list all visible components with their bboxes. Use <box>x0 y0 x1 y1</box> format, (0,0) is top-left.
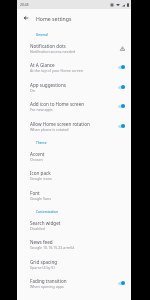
staticText: Search widget <box>30 220 61 226</box>
staticText: On <box>30 88 36 93</box>
button[interactable]: App suggestions <box>17 77 131 97</box>
button[interactable]: Back <box>17 9 34 27</box>
button[interactable]: Allow Home screen rotation <box>17 116 131 136</box>
staticText: Customization <box>36 210 131 214</box>
staticText: App suggestions <box>30 82 66 88</box>
staticText: At the top of your Home screen <box>30 68 83 73</box>
staticText: Accent <box>30 151 45 157</box>
button[interactable]: Font <box>17 185 131 205</box>
button[interactable]: News feed <box>17 234 131 254</box>
staticText: For new apps <box>30 107 53 112</box>
staticText: Google Sans <box>30 196 51 201</box>
staticText: General <box>36 33 131 37</box>
button[interactable]: Toggle <box>117 63 128 71</box>
staticText: Chosen <box>30 157 43 162</box>
button[interactable]: Grid spacing <box>17 254 131 274</box>
button[interactable]: Toggle <box>117 279 128 287</box>
staticText: Icon pack <box>30 170 51 176</box>
staticText: Google icons <box>30 176 52 181</box>
button[interactable]: Toggle <box>117 83 128 91</box>
button[interactable]: Search widget <box>17 215 131 235</box>
button[interactable]: Toggle <box>117 102 128 110</box>
staticText: Font <box>30 190 40 196</box>
staticText: Add icon to Home screen <box>30 101 85 107</box>
staticText: Notification dots <box>30 43 66 49</box>
staticText: Notification access needed <box>30 49 76 54</box>
staticText: Home settings <box>36 15 72 22</box>
staticText: When phone is rotated <box>30 127 69 132</box>
button[interactable]: Add icon to Home screen <box>17 96 131 116</box>
staticText: Grid spacing <box>30 259 58 265</box>
staticText: Allow Home screen rotation <box>30 121 90 127</box>
staticText: Fading transition <box>30 278 67 284</box>
button[interactable]: Notification dots <box>17 38 131 58</box>
staticText: Sparse (4 by 5) <box>30 265 55 270</box>
button[interactable]: Accent <box>17 146 131 166</box>
staticText: Google 10.16.15.23.arm64 <box>30 245 75 250</box>
staticText: News feed <box>30 239 53 245</box>
staticText: Theme <box>36 141 131 145</box>
staticText: Disabled <box>30 226 45 231</box>
button[interactable]: At A Glance <box>17 57 131 77</box>
button[interactable]: Icon pack <box>17 165 131 185</box>
staticText: When opening apps <box>30 284 64 289</box>
staticText: 20:45 <box>20 2 29 7</box>
button[interactable]: Toggle <box>117 122 128 130</box>
button[interactable]: Fading transition <box>17 273 131 293</box>
staticText: At A Glance <box>30 62 55 68</box>
